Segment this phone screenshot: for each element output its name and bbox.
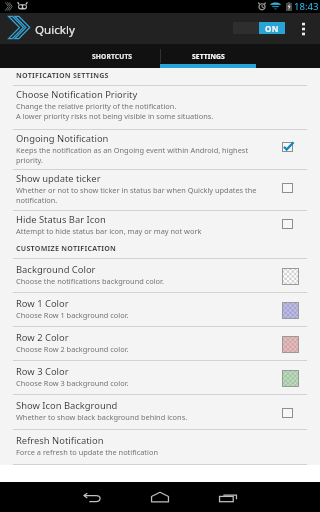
staticText: Row 3 Color (16, 365, 69, 378)
button[interactable]: Row 1 Color (0, 293, 320, 327)
staticText: Change the relative priority of the noti… (16, 101, 177, 111)
staticText: Force a refresh to update the notificati… (16, 447, 158, 457)
staticText: ON (265, 23, 279, 34)
staticText: Keeps the notification as an Ongoing eve… (16, 145, 249, 155)
staticText: CUSTOMIZE NOTIFICATION (16, 243, 117, 253)
button[interactable]: Row 2 Color (0, 327, 320, 361)
staticText: Show Icon Background (16, 399, 118, 412)
button[interactable]: Row 3 Color (0, 361, 320, 395)
staticText: Choose Row 2 background color. (16, 344, 129, 354)
button[interactable]: Show Icon Background (0, 395, 320, 430)
staticText: Whether to show black background behind … (16, 412, 188, 422)
staticText: Whether or not to show ticker in status … (16, 185, 257, 195)
staticText: Choose Row 3 background color. (16, 378, 129, 388)
staticText: Refresh Notification (16, 434, 104, 447)
button[interactable]: Back (75, 482, 109, 512)
button[interactable]: Hide Status Bar Icon (0, 211, 320, 241)
staticText: Attempt to hide status bar icon, may or … (16, 226, 202, 236)
staticText: Choose Row 1 background color. (16, 310, 129, 320)
staticText: Background Color (16, 263, 96, 276)
staticText: Ongoing Notification (16, 132, 109, 145)
staticText: Choose the notifications background colo… (16, 276, 164, 286)
button[interactable]: SETTINGS (160, 44, 256, 68)
button[interactable]: Refresh Notification (0, 430, 320, 465)
button[interactable]: Home (143, 482, 177, 512)
staticText: Hide Status Bar Icon (16, 213, 106, 226)
staticText: Row 2 Color (16, 331, 69, 344)
button[interactable]: SHORTCUTS (64, 44, 160, 68)
staticText: Row 1 Color (16, 297, 69, 310)
staticText: A lower priority risks not being visible… (16, 111, 214, 121)
button[interactable]: Ongoing Notification (0, 130, 320, 170)
button[interactable]: Quickly enabled (233, 22, 285, 34)
staticText: notification. (16, 195, 58, 205)
staticText: Show update ticker (16, 172, 101, 185)
button[interactable]: Show update ticker (0, 170, 320, 211)
staticText: SETTINGS (192, 52, 225, 61)
staticText: SHORTCUTS (92, 52, 133, 61)
staticText: NOTIFICATION SETTINGS (16, 70, 109, 80)
staticText: 18:43 (294, 0, 319, 13)
button[interactable]: Choose Notification Priority (0, 86, 320, 130)
staticText: priority. (16, 155, 44, 165)
button[interactable]: More options (294, 13, 312, 44)
staticText: Choose Notification Priority (16, 88, 138, 101)
button[interactable]: Background Color (0, 259, 320, 293)
button[interactable]: Recent apps (211, 482, 245, 512)
staticText: Quickly (35, 22, 75, 38)
